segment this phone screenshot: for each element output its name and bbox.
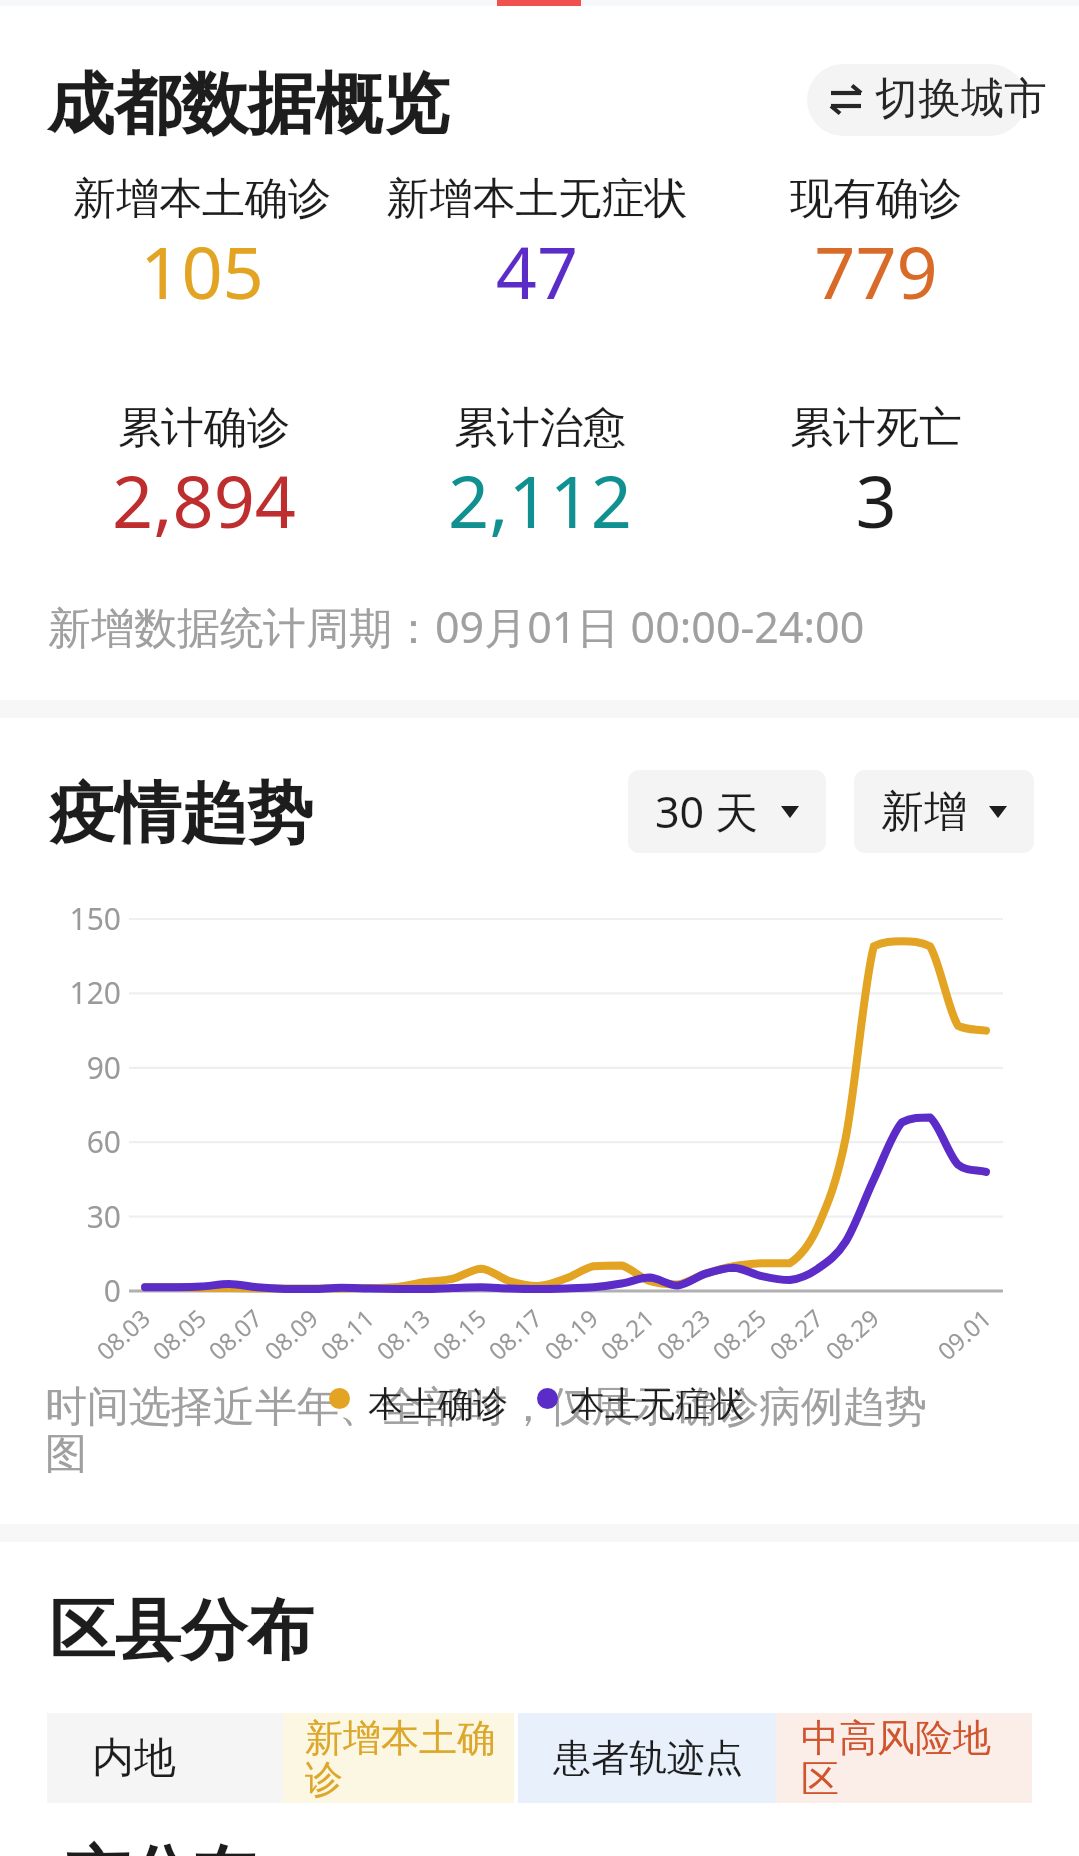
staticText: 切换城市 <box>875 72 1047 126</box>
staticText: 08.03 <box>57 1301 157 1395</box>
staticText: 60 <box>0 1121 121 1162</box>
staticText: 现有确诊 <box>626 172 1079 226</box>
staticText: 患者轨迹点 <box>553 1734 770 1782</box>
button[interactable]: 患者轨迹点 <box>518 1713 776 1803</box>
staticText: 新增本土确诊 <box>305 1714 508 1803</box>
staticText: 08.15 <box>393 1301 493 1395</box>
staticText: 08.19 <box>505 1301 605 1395</box>
staticText: 疫情趋势 <box>49 772 313 855</box>
staticText: 市分布 <box>66 1836 255 1856</box>
staticText: 本土确诊 <box>368 1382 508 1426</box>
staticText: 新增本土确诊 <box>0 172 452 226</box>
staticText: 08.23 <box>617 1301 717 1395</box>
staticText: 08.05 <box>113 1301 213 1395</box>
staticText: 2,894 <box>0 451 454 549</box>
staticText: 3 <box>626 451 1079 549</box>
staticText: 新增本土无症状 <box>287 172 787 226</box>
staticText: 90 <box>0 1047 121 1088</box>
button[interactable]: 切换城市 <box>807 64 1047 136</box>
staticText: 08.13 <box>337 1301 437 1395</box>
button[interactable]: 中高风险地区 <box>776 1713 1032 1803</box>
button[interactable]: 新增本土确诊 <box>283 1713 514 1803</box>
staticText: 08.09 <box>225 1301 325 1395</box>
staticText: 2,112 <box>290 451 790 549</box>
staticText: 08.07 <box>169 1301 269 1395</box>
staticText: 新增 <box>881 785 967 839</box>
staticText: 08.25 <box>673 1301 773 1395</box>
staticText: 区县分布 <box>49 1589 313 1672</box>
staticText: 08.29 <box>786 1301 886 1395</box>
button[interactable]: 新增 <box>854 770 1034 853</box>
staticText: 内地 <box>92 1732 277 1785</box>
staticText: 本土无症状 <box>570 1382 745 1426</box>
staticText: 30 <box>0 1196 121 1237</box>
staticText: 新增数据统计周期：09月01日 00:00-24:00 <box>48 597 865 656</box>
staticText: 累计死亡 <box>626 401 1079 455</box>
staticText: 08.21 <box>561 1301 661 1395</box>
staticText: 08.11 <box>281 1301 381 1395</box>
staticText: 时间选择近半年、全部时，仅展示确诊病例趋势图 <box>45 1381 965 1481</box>
staticText: 中高风险地区 <box>801 1714 1026 1803</box>
button[interactable]: 内地 <box>47 1713 283 1803</box>
staticText: 累计确诊 <box>0 401 454 455</box>
staticText: 0 <box>0 1270 121 1311</box>
staticText: 779 <box>626 222 1079 320</box>
staticText: 累计治愈 <box>290 401 790 455</box>
button[interactable]: 30 天 <box>628 770 826 853</box>
staticText: 08.27 <box>730 1301 830 1395</box>
staticText: 105 <box>0 222 452 320</box>
staticText: 120 <box>0 972 121 1013</box>
staticText: 成都数据概览 <box>47 62 449 146</box>
staticText: 150 <box>0 898 121 939</box>
staticText: 09.01 <box>898 1301 998 1395</box>
staticText: 30 天 <box>655 782 759 841</box>
staticText: 47 <box>287 222 787 320</box>
staticText: 08.17 <box>449 1301 549 1395</box>
